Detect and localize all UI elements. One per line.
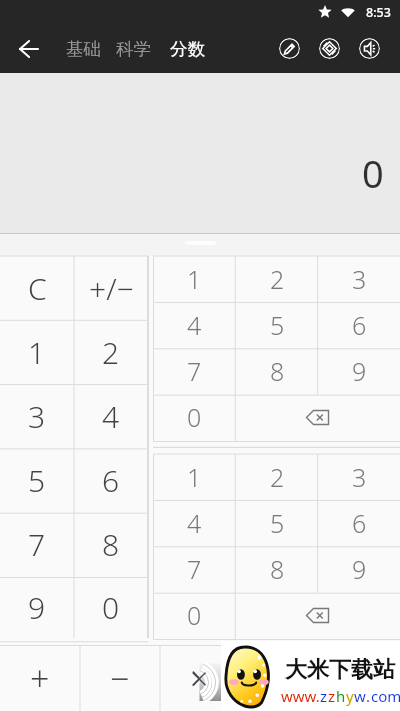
staticText: ×	[190, 656, 209, 700]
button[interactable]: 6	[74, 448, 148, 512]
staticText: C	[28, 268, 47, 309]
staticText: 9	[352, 552, 367, 586]
button[interactable]: 1	[153, 256, 236, 302]
staticText: 5	[270, 308, 285, 342]
button[interactable]: =	[320, 645, 400, 711]
button[interactable]: 0	[153, 394, 235, 440]
staticText: −	[110, 655, 130, 701]
staticText: 3	[352, 460, 367, 494]
staticText: 3	[352, 262, 367, 296]
staticText: 4	[187, 506, 202, 540]
button[interactable]: +/−	[74, 256, 148, 320]
staticText: 6	[102, 460, 120, 501]
button[interactable]: Backspace	[235, 394, 400, 440]
button[interactable]: 9	[318, 348, 400, 394]
button[interactable]: 8	[236, 348, 318, 394]
staticText: 8	[270, 552, 285, 586]
button[interactable]: 6	[318, 302, 400, 348]
staticText: 2	[102, 332, 120, 373]
staticText: 6	[352, 308, 367, 342]
button[interactable]: 7	[0, 512, 74, 576]
staticText: 5	[270, 506, 285, 540]
staticText: 8:53	[366, 4, 391, 21]
button[interactable]: Sound	[359, 38, 380, 59]
button[interactable]: 9	[0, 576, 74, 638]
staticText: 1	[28, 332, 46, 373]
staticText: 9	[352, 354, 367, 388]
staticText: z	[328, 686, 336, 706]
staticText: 0	[187, 598, 202, 632]
staticText: =	[350, 655, 370, 701]
staticText: 4	[102, 396, 120, 437]
button[interactable]: 0	[153, 592, 235, 638]
staticText: 4	[187, 308, 202, 342]
staticText: 大米下载站	[285, 656, 395, 684]
button[interactable]: 2	[74, 320, 148, 384]
staticText: h	[336, 686, 346, 706]
staticText: ×	[190, 655, 210, 701]
button[interactable]: Eraser	[319, 38, 340, 59]
button[interactable]: 1	[0, 320, 74, 384]
staticText: 8	[102, 524, 120, 565]
button[interactable]: 8	[236, 546, 318, 592]
button[interactable]: ÷	[240, 645, 320, 711]
button[interactable]: 9	[318, 546, 400, 592]
staticText: 分数	[170, 38, 205, 60]
button[interactable]: 4	[153, 500, 236, 546]
staticText: 0	[187, 400, 202, 434]
button[interactable]: 2	[236, 256, 318, 302]
staticText: z	[320, 686, 328, 706]
staticText: 7	[28, 524, 46, 565]
button[interactable]: 基础	[64, 28, 103, 70]
staticText: 1	[187, 262, 202, 296]
staticText: 5	[28, 460, 46, 501]
staticText: +/−	[89, 268, 134, 309]
staticText: 7	[187, 354, 202, 388]
staticText: w	[354, 686, 366, 706]
button[interactable]: 科学	[114, 28, 153, 70]
staticText: 2	[270, 262, 285, 296]
button[interactable]: 1	[153, 454, 236, 500]
button[interactable]: C	[0, 256, 74, 320]
button[interactable]: Edit	[279, 38, 300, 59]
button[interactable]: 5	[236, 500, 318, 546]
button[interactable]: +	[0, 645, 80, 711]
button[interactable]: ×	[160, 645, 240, 711]
staticText: 9	[28, 587, 46, 628]
staticText: 7	[187, 552, 202, 586]
staticText: 8	[270, 354, 285, 388]
button[interactable]: 3	[318, 256, 400, 302]
staticText: +	[30, 655, 50, 701]
button[interactable]: 5	[236, 302, 318, 348]
button[interactable]: 分数	[168, 28, 207, 70]
button[interactable]: 2	[236, 454, 318, 500]
button[interactable]: 4	[153, 302, 236, 348]
staticText: 0	[362, 147, 384, 199]
staticText: 1	[187, 460, 202, 494]
button[interactable]: Backspace	[235, 592, 400, 638]
button[interactable]: 7	[153, 546, 236, 592]
button[interactable]: −	[80, 645, 160, 711]
staticText: 0	[102, 587, 120, 628]
button[interactable]: 8	[74, 512, 148, 576]
button[interactable]: 7	[153, 348, 236, 394]
staticText: 2	[270, 460, 285, 494]
button[interactable]: 4	[74, 384, 148, 448]
button[interactable]: 3	[0, 384, 74, 448]
staticText: 基础	[66, 38, 101, 60]
button[interactable]: 0	[74, 576, 148, 638]
staticText: 3	[28, 396, 46, 437]
button[interactable]: 6	[318, 500, 400, 546]
staticText: com	[371, 686, 400, 706]
button[interactable]: Back	[0, 24, 55, 73]
staticText: www.	[281, 686, 320, 706]
staticText: .	[366, 686, 371, 706]
button[interactable]: 5	[0, 448, 74, 512]
staticText: 科学	[116, 38, 151, 60]
staticText: y	[346, 686, 354, 706]
staticText: 6	[352, 506, 367, 540]
staticText: ÷	[270, 655, 290, 701]
button[interactable]: 3	[318, 454, 400, 500]
